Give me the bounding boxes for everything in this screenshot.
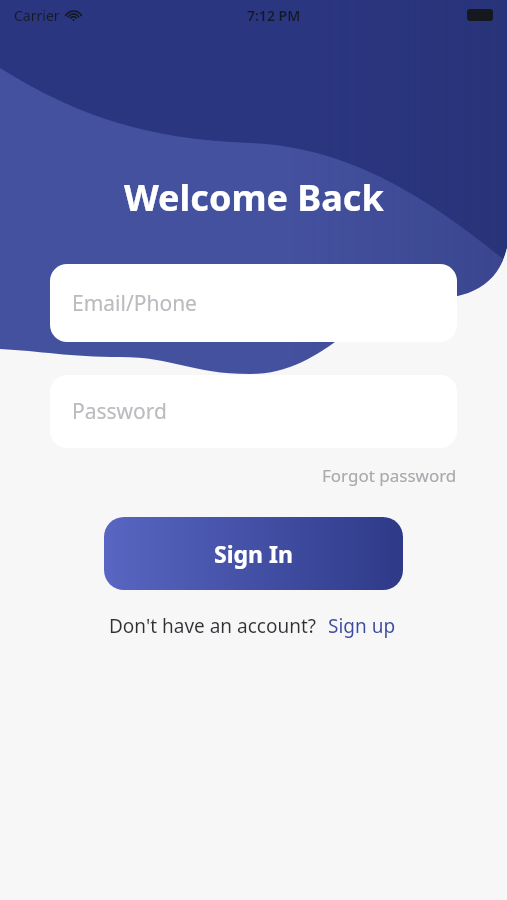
button[interactable]: Password <box>50 375 457 448</box>
staticText: Sign In <box>214 538 293 569</box>
staticText: Password <box>72 397 167 426</box>
staticText: Sign up <box>328 613 396 639</box>
staticText: Carrier <box>14 6 60 25</box>
staticText: Welcome Back <box>124 173 384 222</box>
button[interactable]: Sign In <box>104 517 403 590</box>
button[interactable]: Email/Phone <box>50 264 457 342</box>
staticText: Email/Phone <box>72 289 197 318</box>
staticText: Forgot password <box>322 464 457 487</box>
staticText: Don't have an account? <box>109 613 317 639</box>
other: Wi-Fi <box>66 8 81 23</box>
staticText: 7:12 PM <box>247 6 301 25</box>
other: Battery <box>467 9 493 21</box>
button[interactable]: Sign up <box>326 611 398 641</box>
button[interactable]: Forgot password <box>319 461 460 490</box>
